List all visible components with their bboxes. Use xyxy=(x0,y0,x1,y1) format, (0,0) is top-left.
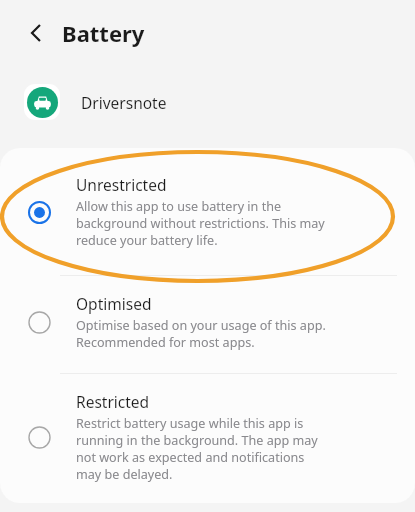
staticText: Optimise based on your usage of this app… xyxy=(76,317,326,351)
button[interactable]: Back xyxy=(18,15,54,51)
button[interactable]: Restricted xyxy=(0,374,415,503)
button[interactable]: Unrestricted xyxy=(0,148,415,275)
staticText: Unrestricted xyxy=(76,174,167,195)
staticText: Restricted xyxy=(76,391,150,412)
staticText: Restrict battery usage while this app is… xyxy=(76,415,318,483)
staticText: Allow this app to use battery in the bac… xyxy=(76,198,325,249)
staticText: Driversnote xyxy=(81,92,167,113)
button[interactable]: Optimised xyxy=(0,276,415,373)
staticText: Optimised xyxy=(76,293,152,314)
staticText: Battery xyxy=(62,18,145,48)
button[interactable]: Driversnote xyxy=(0,74,415,130)
